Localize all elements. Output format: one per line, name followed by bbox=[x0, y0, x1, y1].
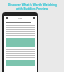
staticText: with Buddies Preview bbox=[16, 7, 48, 11]
staticText: Title bbox=[18, 17, 22, 20]
staticText: Discover What's Worth Watching bbox=[8, 3, 57, 7]
